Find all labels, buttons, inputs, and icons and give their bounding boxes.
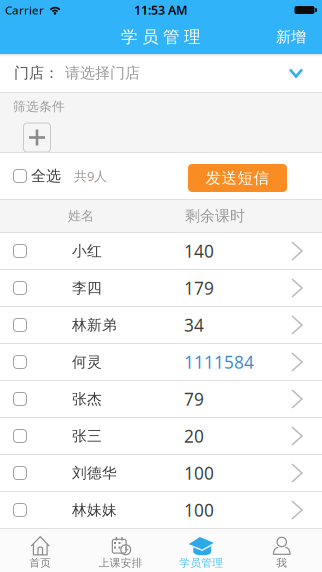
- staticText: 林新弟: [72, 316, 117, 334]
- staticText: 何灵: [72, 353, 102, 371]
- button[interactable]: 全选: [0, 167, 61, 185]
- staticText: Carrier: [5, 2, 44, 18]
- staticText: 179: [184, 276, 214, 300]
- staticText: 140: [184, 239, 214, 263]
- staticText: 79: [184, 387, 204, 411]
- button[interactable]: 刘德华: [0, 455, 322, 491]
- staticText: 剩余课时: [185, 207, 245, 225]
- staticText: 发送短信: [205, 168, 269, 188]
- button[interactable]: 新增: [276, 28, 322, 46]
- button[interactable]: 选择何灵: [0, 355, 27, 369]
- staticText: 张杰: [72, 390, 102, 408]
- staticText: 我: [276, 556, 287, 570]
- staticText: 林妹妹: [72, 501, 117, 519]
- button[interactable]: 上课安排: [80, 531, 161, 570]
- staticText: 小红: [72, 242, 102, 260]
- staticText: 上课安排: [99, 556, 143, 570]
- staticText: 100: [184, 461, 214, 485]
- staticText: 李四: [72, 279, 102, 297]
- button[interactable]: 选择小红: [0, 244, 27, 258]
- staticText: 筛选条件: [13, 98, 65, 114]
- button[interactable]: 选择张三: [0, 429, 27, 443]
- button[interactable]: 发送短信: [188, 162, 287, 190]
- button[interactable]: 门店：: [0, 54, 322, 92]
- staticText: 学员管理: [121, 27, 201, 47]
- button[interactable]: 选择刘德华: [0, 466, 27, 480]
- button[interactable]: 林新弟: [0, 307, 322, 343]
- button[interactable]: 学员管理: [161, 531, 241, 570]
- button[interactable]: 我: [241, 531, 322, 570]
- staticText: 20: [184, 424, 204, 448]
- button[interactable]: 选择李四: [0, 281, 27, 295]
- staticText: 11:53 AM: [134, 2, 188, 18]
- staticText: 姓名: [68, 208, 94, 224]
- staticText: 门店：: [14, 64, 59, 82]
- staticText: 共9人: [74, 167, 107, 185]
- button[interactable]: 首页: [0, 531, 80, 570]
- staticText: 34: [184, 313, 204, 337]
- staticText: 首页: [29, 556, 51, 570]
- button[interactable]: 选择林妹妹: [0, 503, 27, 517]
- button[interactable]: 张三: [0, 418, 322, 454]
- staticText: 全选: [31, 167, 61, 185]
- staticText: 请选择门店: [65, 64, 140, 82]
- staticText: 张三: [72, 427, 102, 445]
- button[interactable]: 张杰: [0, 381, 322, 417]
- staticText: 新增: [276, 28, 306, 46]
- staticText: 100: [184, 498, 214, 522]
- button[interactable]: 小红: [0, 233, 322, 269]
- button[interactable]: 李四: [0, 270, 322, 306]
- button[interactable]: 何灵: [0, 344, 322, 380]
- staticText: 1111584: [184, 350, 254, 374]
- button[interactable]: 选择林新弟: [0, 318, 27, 332]
- button[interactable]: 选择张杰: [0, 392, 27, 406]
- staticText: 学员管理: [179, 556, 223, 570]
- staticText: 刘德华: [72, 464, 117, 482]
- button[interactable]: 林妹妹: [0, 492, 322, 528]
- button[interactable]: 添加筛选条件: [23, 122, 51, 152]
